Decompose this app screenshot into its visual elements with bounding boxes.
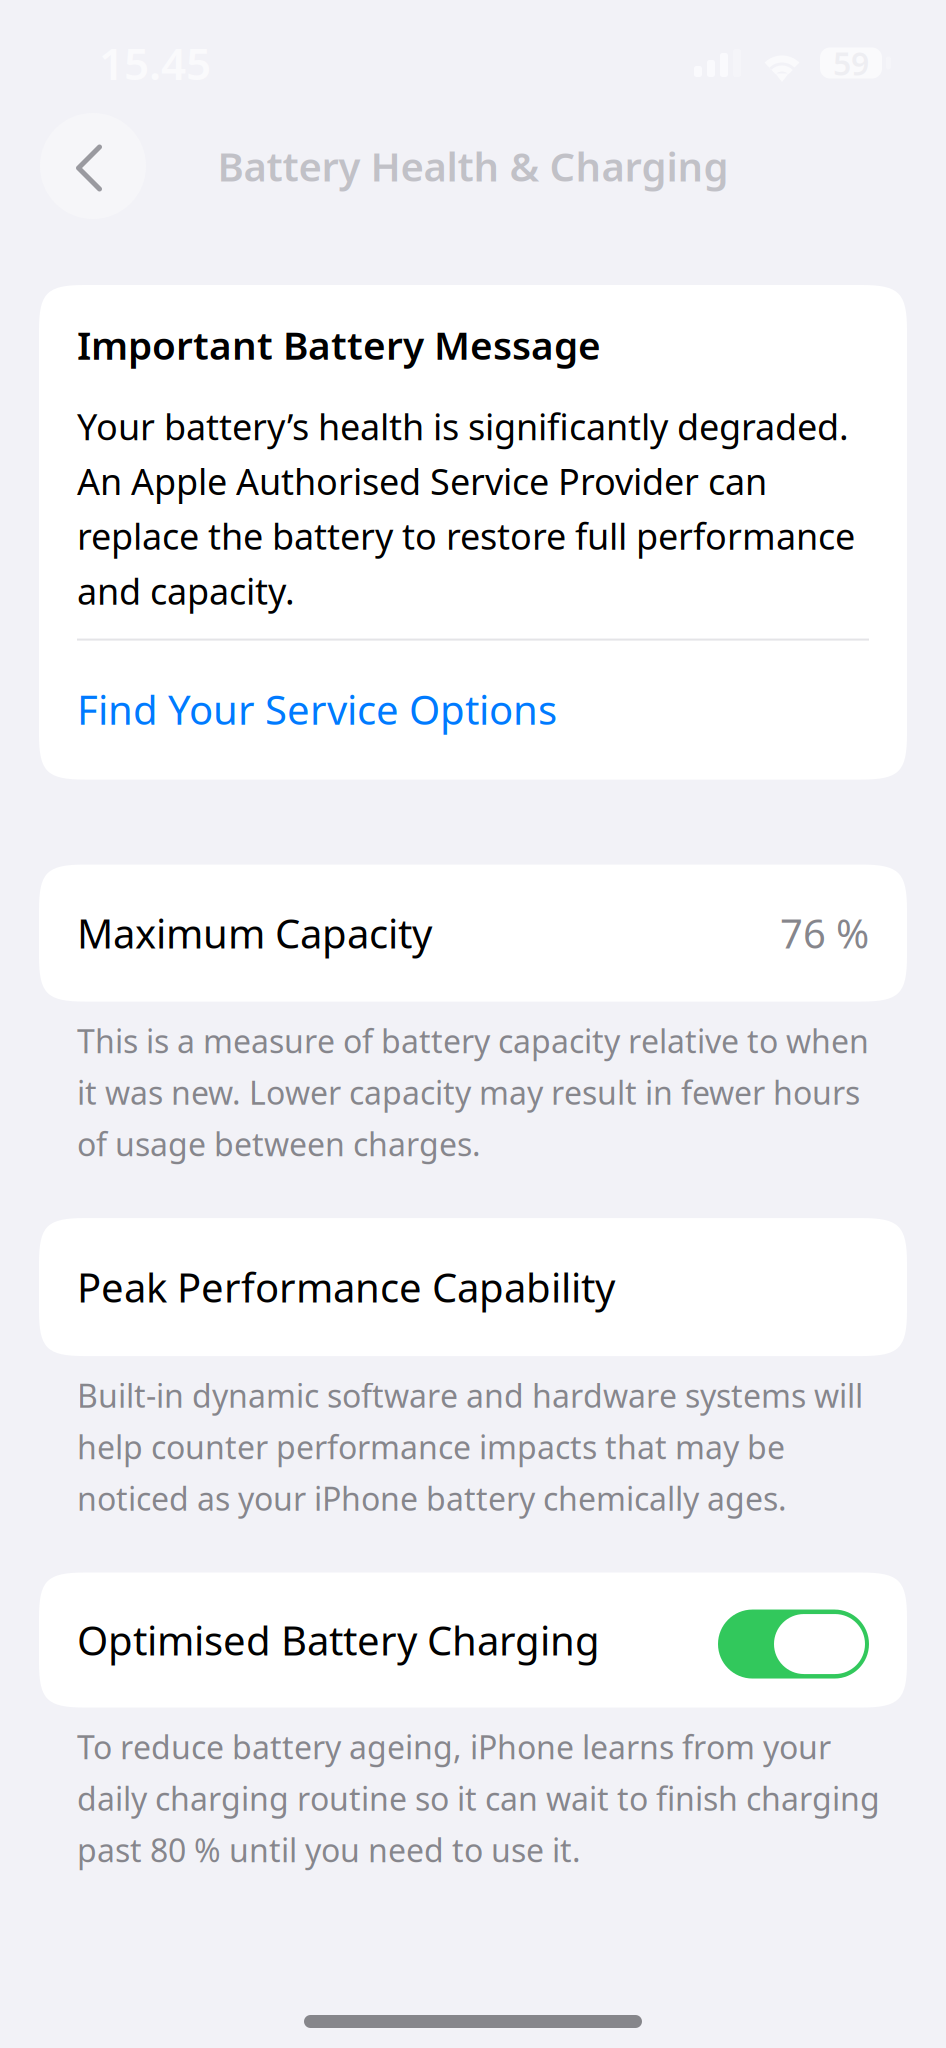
staticText: Built-in dynamic software and hardware s… <box>77 1374 863 1520</box>
staticText: Important Battery Message <box>77 319 601 370</box>
staticText: Your battery’s health is significantly d… <box>77 402 855 614</box>
staticText: This is a measure of battery capacity re… <box>77 1020 869 1165</box>
button[interactable]: Peak Performance Capability <box>0 1218 946 1356</box>
staticText: Peak Performance Capability <box>77 1260 615 1314</box>
staticText: 15.45 <box>99 34 211 92</box>
staticText: 76 % <box>780 906 869 960</box>
staticText: To reduce battery ageing, iPhone learns … <box>77 1725 880 1871</box>
staticText: Find Your Service Options <box>77 683 557 736</box>
staticText: Optimised Battery Charging <box>77 1613 600 1667</box>
staticText: 59 <box>833 42 869 84</box>
staticText: Battery Health & Charging <box>217 139 728 192</box>
staticText: Maximum Capacity <box>77 906 432 960</box>
button[interactable]: Find Your Service Options <box>77 683 869 780</box>
button[interactable]: Back <box>40 113 146 219</box>
button[interactable]: Optimised Battery Charging <box>718 1605 869 1674</box>
